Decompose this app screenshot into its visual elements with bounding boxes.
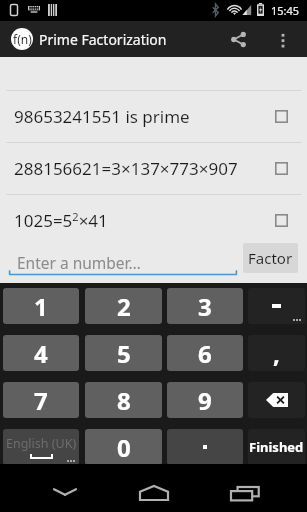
button[interactable]: 7 <box>3 382 79 418</box>
button[interactable] <box>248 288 305 324</box>
button[interactable]: 5 <box>85 335 162 371</box>
button[interactable]: Home <box>124 464 184 512</box>
other: Backspace <box>266 393 288 407</box>
staticText: 15:45 <box>271 3 300 18</box>
staticText: 1 <box>34 290 48 323</box>
button[interactable]: Back <box>33 464 96 512</box>
staticText: 9 <box>198 384 212 417</box>
button[interactable]: 98653241551 is prime <box>0 91 307 142</box>
staticText: , <box>273 337 280 370</box>
button[interactable]: More options <box>265 21 301 57</box>
staticText: Finished <box>249 438 304 456</box>
button[interactable]: Recents <box>214 464 274 512</box>
button[interactable]: 1 <box>3 288 79 324</box>
button[interactable]: Finished <box>248 429 305 465</box>
staticText: 5 <box>117 337 131 370</box>
button[interactable]: 2 <box>85 288 162 324</box>
button[interactable]: 8 <box>85 382 162 418</box>
staticText: f(n) <box>13 31 32 47</box>
staticText: 8 <box>117 384 131 417</box>
staticText: 98653241551 is prime <box>14 105 190 128</box>
button[interactable]: 9 <box>167 382 243 418</box>
staticText: 288156621=3×137×773×907 <box>14 157 238 180</box>
button[interactable]: Share <box>220 21 256 57</box>
staticText: English (UK) <box>6 435 77 452</box>
staticText: Enter a number… <box>17 252 141 273</box>
button[interactable]: 288156621=3×137×773×907 <box>0 143 307 194</box>
button[interactable]: , <box>248 335 305 371</box>
staticText: 2 <box>117 290 131 323</box>
staticText: 7 <box>34 384 48 417</box>
button[interactable]: 0 <box>85 429 162 465</box>
button[interactable]: 4 <box>3 335 79 371</box>
button[interactable]: 6 <box>167 335 243 371</box>
button[interactable] <box>167 429 243 465</box>
staticText: 6 <box>198 337 212 370</box>
staticText: 3 <box>198 290 212 323</box>
button[interactable]: 3 <box>167 288 243 324</box>
staticText: 1025=52×41 <box>14 209 108 232</box>
button[interactable]: 1025=52×41 <box>0 195 307 246</box>
staticText: Factor <box>248 248 293 268</box>
button[interactable]: Backspace <box>248 382 305 418</box>
staticText: 4 <box>34 337 48 370</box>
button[interactable]: English (UK) <box>3 429 79 465</box>
staticText: 0 <box>117 431 131 464</box>
button[interactable]: Factor <box>243 243 298 273</box>
staticText: Prime Factorization <box>39 30 167 49</box>
